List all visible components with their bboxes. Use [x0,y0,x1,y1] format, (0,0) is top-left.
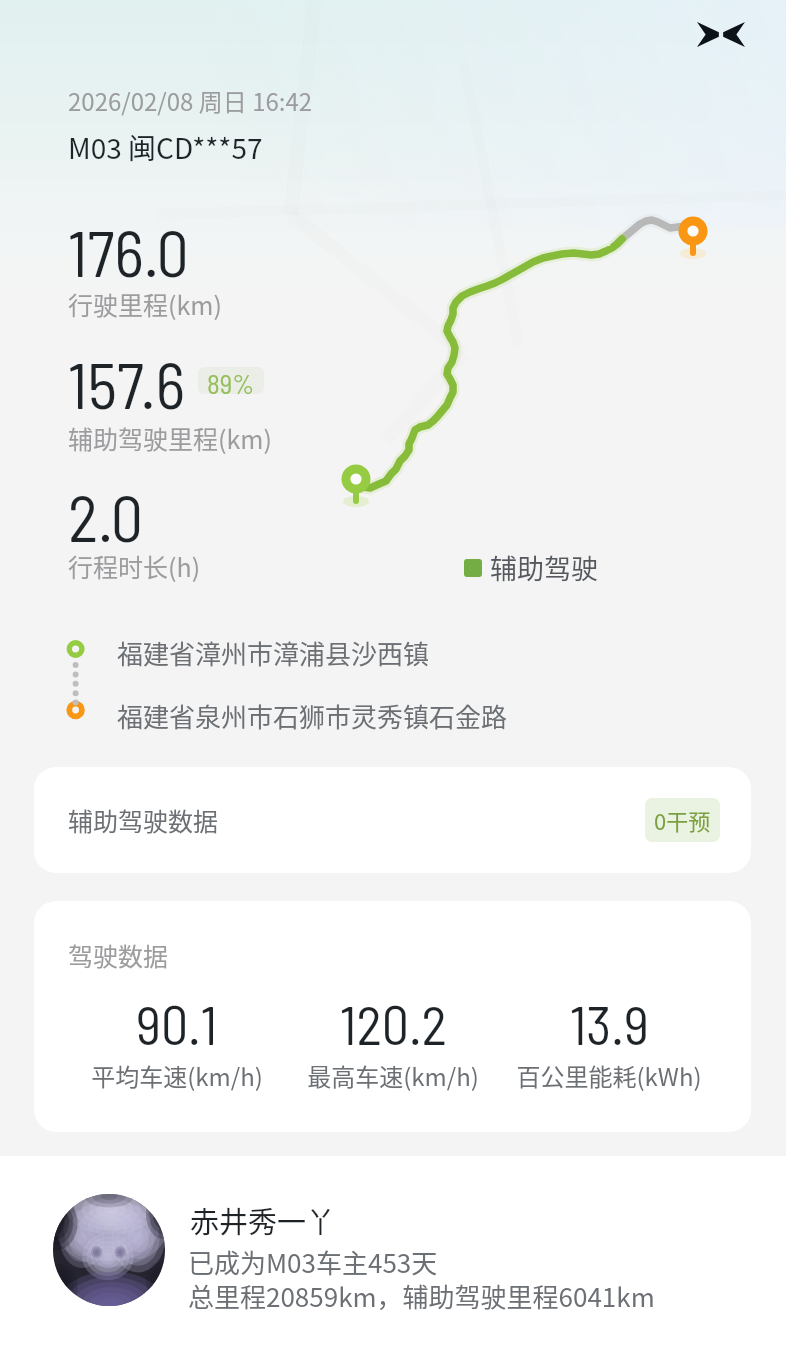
staticText: 89% [207,367,255,394]
staticText: 百公里能耗(kWh) [516,1058,702,1093]
staticText: 2.0 [68,478,144,555]
button[interactable]: Collapse [679,5,762,63]
button[interactable]: 驾驶数据 [34,901,751,1132]
staticText: 最高车速(km/h) [307,1058,479,1093]
staticText: M03 闽CD***57 [68,127,263,168]
staticText: 120.2 [340,991,447,1056]
button[interactable]: 辅助驾驶数据 [34,767,751,873]
staticText: 辅助驾驶 [490,548,598,587]
staticText: 13.9 [570,991,649,1056]
staticText: 平均车速(km/h) [91,1058,263,1093]
staticText: 157.6 [68,345,186,422]
staticText: 福建省泉州市石狮市灵秀镇石金路 [117,697,508,735]
staticText: 90.1 [136,991,218,1056]
staticText: 福建省漳州市漳浦县沙西镇 [117,634,430,672]
staticText: 驾驶数据 [68,937,169,973]
staticText: 行驶里程(km) [68,286,222,322]
staticText: 总里程20859km，辅助驾驶里程6041km [188,1277,655,1315]
staticText: 0干预 [654,804,711,836]
staticText: 辅助驾驶数据 [68,802,219,838]
staticText: 2026/02/08 周日 16:42 [68,83,313,118]
staticText: 已成为M03车主453天 [188,1243,438,1281]
staticText: 176.0 [68,213,189,290]
staticText: 赤井秀一丫 [190,1199,336,1241]
staticText: 行程时长(h) [68,548,201,584]
button[interactable]: User avatar [53,1194,165,1306]
staticText: 辅助驾驶里程(km) [68,420,272,456]
